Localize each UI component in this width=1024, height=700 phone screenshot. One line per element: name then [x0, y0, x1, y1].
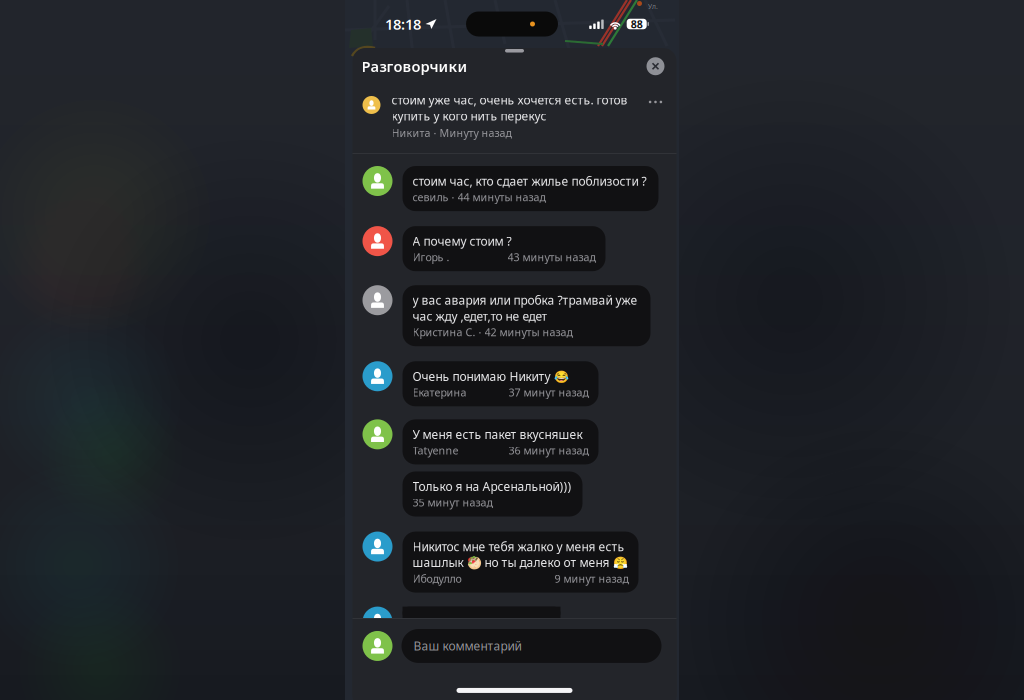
staticText: У меня есть пакет вкусняшек [412, 426, 582, 442]
staticText: · [475, 325, 484, 339]
button[interactable]: Только я на Арсенальной))) [402, 471, 582, 517]
button[interactable]: А почему стоим ? [402, 226, 605, 271]
staticText: Кристина С. [412, 325, 475, 339]
staticText: 36 минут назад [508, 443, 588, 457]
button[interactable]: Никитос мне тебя жалко у меня есть [402, 532, 638, 593]
staticText: Разговорчики [361, 56, 467, 76]
staticText: Очень понимаю Никиту 😂 [412, 368, 568, 384]
staticText: купить у кого нить перекус [391, 108, 546, 124]
staticText: Ибодулло [412, 571, 461, 586]
staticText: у вас авария или пробка ?трамвай уже [412, 292, 637, 308]
button[interactable]: стоим час, кто сдает жилье поблизости ? [402, 166, 658, 211]
staticText: Екатерина [412, 385, 466, 399]
staticText: 42 минуты назад [484, 325, 572, 339]
staticText: Никитос мне тебя жалко у меня есть [412, 539, 624, 554]
staticText: 37 минут назад [508, 385, 588, 399]
staticText: А почему стоим ? [412, 233, 511, 249]
button[interactable]: Close [646, 57, 664, 75]
staticText: Ул. [648, 2, 658, 11]
staticText: стоим уже час, очень хочется есть. готов [391, 92, 627, 108]
staticText: Никита · Минуту назад [391, 126, 511, 140]
button[interactable]: More options [642, 92, 668, 112]
staticText: Ваш комментарий [413, 638, 521, 654]
staticText: Tatyenne [412, 443, 458, 457]
staticText: Только я на Арсенальной))) [412, 478, 571, 494]
staticText: час жду ,едет,то не едет [412, 308, 547, 324]
staticText: 35 минут назад [412, 495, 492, 510]
staticText: стоим час, кто сдает жилье поблизости ? [412, 173, 646, 189]
button[interactable]: Ваш комментарий [401, 629, 661, 663]
staticText: 43 минуты назад [507, 250, 595, 264]
button[interactable]: Очень понимаю Никиту 😂 [402, 361, 598, 406]
staticText: · [448, 190, 457, 204]
staticText: 18:18 [385, 14, 421, 34]
staticText: севиль [412, 190, 448, 204]
staticText: 9 минут назад [554, 571, 628, 586]
staticText: шашлык 🥙 но ты далеко от меня 😤 [412, 554, 627, 570]
staticText: Игорь . [412, 250, 449, 264]
staticText: 44 минуты назад [457, 190, 545, 204]
button[interactable]: у вас авария или пробка ?трамвай уже [402, 285, 650, 346]
staticText: 88 [631, 17, 643, 31]
button[interactable]: У меня есть пакет вкусняшек [402, 419, 598, 464]
